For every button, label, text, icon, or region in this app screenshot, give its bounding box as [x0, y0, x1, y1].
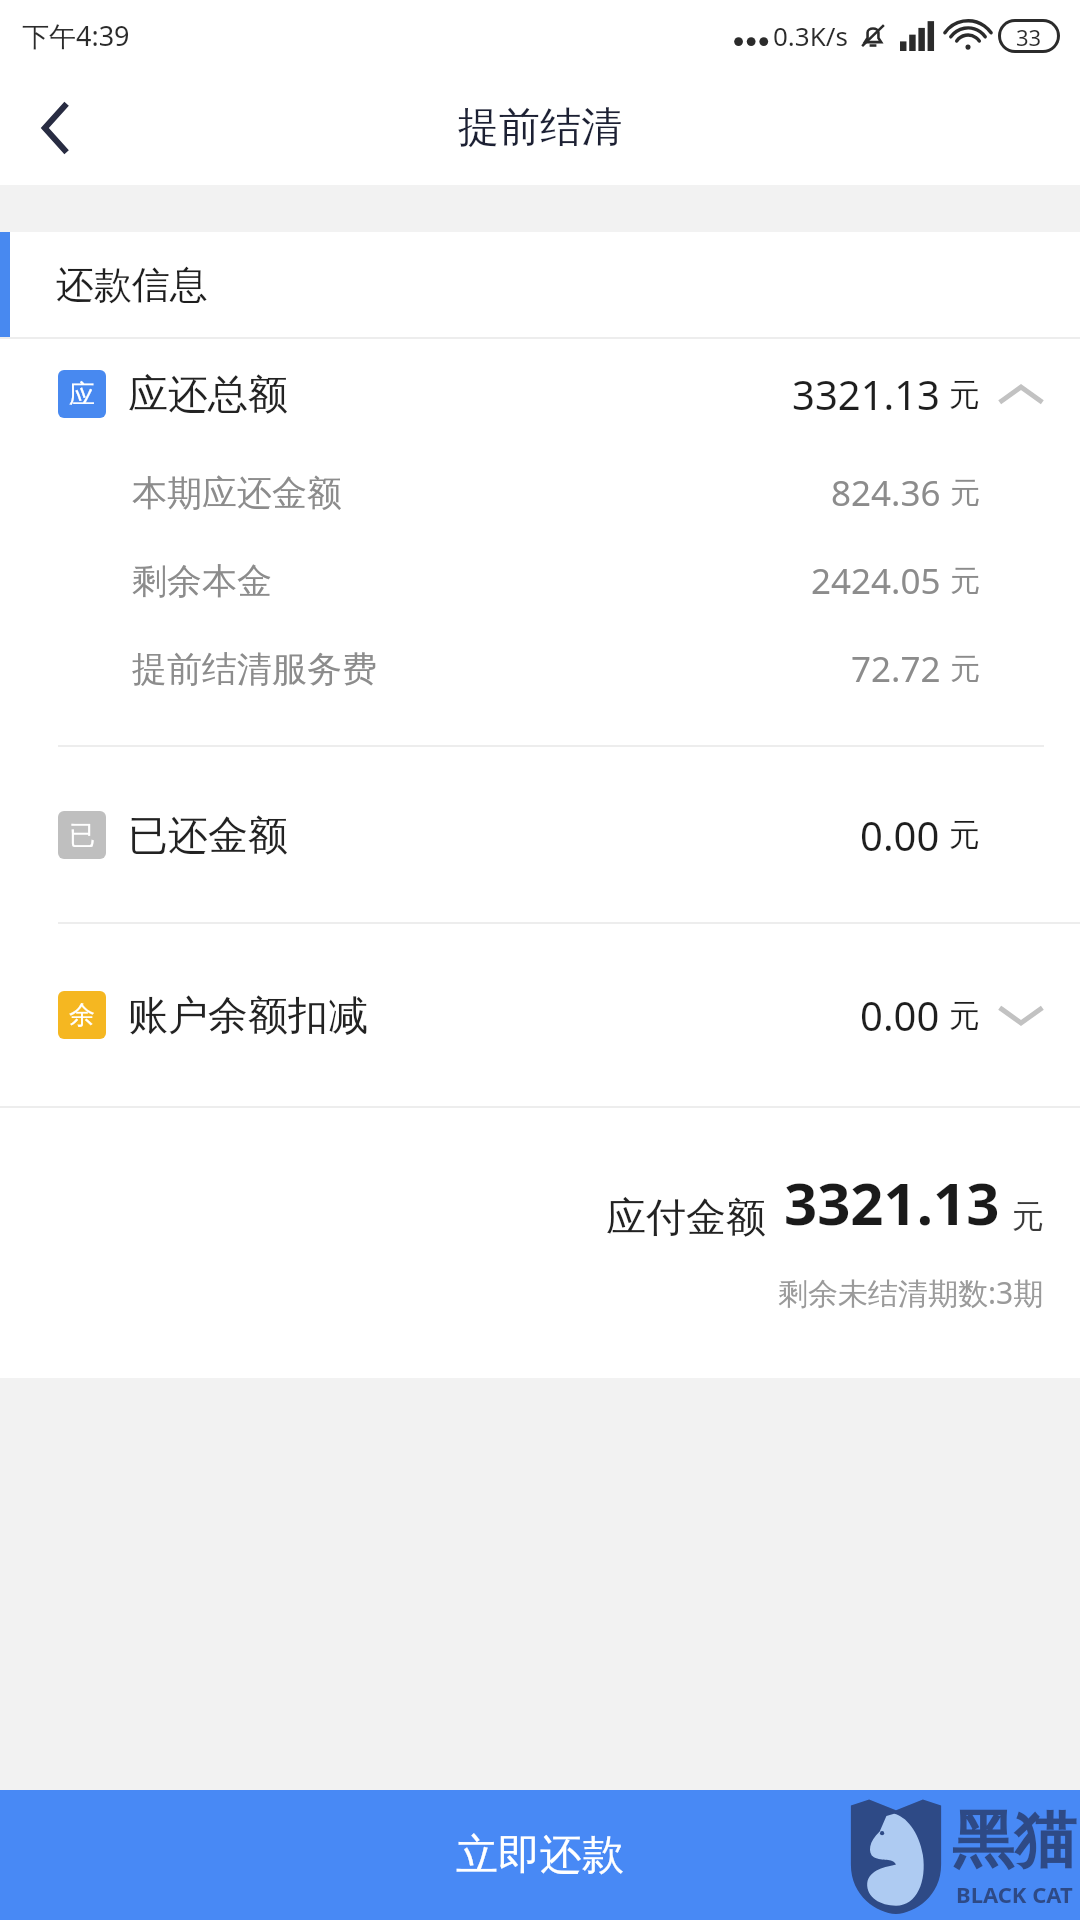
staticText: 余 [69, 999, 95, 1032]
staticText: 账户余额扣减 [128, 990, 368, 1040]
staticText: 已 [69, 819, 95, 852]
button[interactable]: Back [0, 70, 110, 185]
button[interactable]: 立即还款 [0, 1790, 1080, 1920]
staticText: 黑猫 [952, 1801, 1076, 1879]
staticText: 824.36 [831, 469, 941, 517]
staticText: 应还总额 [128, 369, 288, 419]
staticText: 应付金额 [606, 1192, 766, 1242]
staticText: 72.72 [851, 645, 941, 693]
button[interactable]: 余 [0, 924, 1080, 1106]
staticText: 0.00 [860, 988, 940, 1042]
staticText: 0.00 [860, 808, 940, 862]
staticText: 元 [949, 375, 980, 414]
staticText: 应 [69, 378, 95, 411]
staticText: 元 [950, 474, 980, 512]
staticText: 已还金额 [128, 810, 288, 860]
staticText: BLACK CAT [956, 1879, 1073, 1909]
staticText: 0.3K/s [773, 18, 848, 53]
staticText: 2424.05 [811, 557, 941, 605]
staticText: 元 [950, 650, 980, 688]
staticText: 剩余未结清期数:3期 [778, 1272, 1044, 1313]
staticText: 3321.13 [792, 367, 940, 421]
staticText: 元 [950, 562, 980, 600]
button[interactable]: 应 [0, 339, 1080, 449]
staticText: 3321.13 [784, 1163, 1000, 1242]
staticText: 立即还款 [456, 1829, 624, 1882]
staticText: 还款信息 [56, 261, 208, 309]
staticText: 元 [1012, 1196, 1044, 1236]
staticText: 元 [949, 996, 980, 1035]
staticText: 33 [1016, 22, 1042, 50]
staticText: 本期应还金额 [132, 471, 342, 515]
staticText: 元 [949, 815, 980, 854]
button[interactable]: 已 [0, 747, 1080, 922]
staticText: 提前结清 [458, 102, 622, 154]
staticText: 提前结清服务费 [132, 647, 377, 691]
staticText: 下午4:39 [22, 17, 130, 54]
staticText: 剩余本金 [132, 559, 272, 603]
